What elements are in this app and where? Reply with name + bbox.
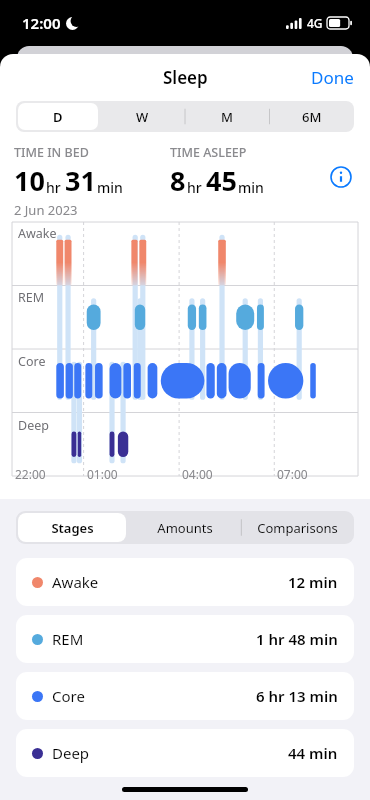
staticText: REM xyxy=(52,629,84,649)
staticText: hr xyxy=(187,178,202,197)
staticText: 44 min xyxy=(288,743,338,763)
button[interactable]: Deep xyxy=(16,729,354,777)
button[interactable]: Awake xyxy=(16,558,354,606)
staticText: 12:00 xyxy=(22,13,61,33)
staticText: Core xyxy=(52,686,85,706)
staticText: 8 xyxy=(170,162,186,199)
button[interactable]: Information about sleep data xyxy=(326,162,356,192)
button[interactable]: Done xyxy=(295,58,370,97)
staticText: Awake xyxy=(52,572,99,592)
button[interactable]: W xyxy=(102,103,182,130)
button[interactable]: M xyxy=(186,103,267,130)
button[interactable]: Stages xyxy=(18,513,126,542)
staticText: 01:00 xyxy=(87,466,118,482)
button[interactable]: 6M xyxy=(271,103,352,130)
staticText: TIME ASLEEP xyxy=(170,144,247,161)
staticText: 1 hr 48 min xyxy=(256,629,338,649)
staticText: 2 Jun 2023 xyxy=(14,201,78,219)
staticText: REM xyxy=(18,289,45,306)
staticText: 10 xyxy=(14,162,45,199)
staticText: Core xyxy=(18,353,46,370)
staticText: 6 hr 13 min xyxy=(256,686,338,706)
button[interactable]: D xyxy=(18,103,98,130)
button[interactable]: Comparisons xyxy=(243,513,352,542)
staticText: 22:00 xyxy=(15,466,46,482)
staticText: 6M xyxy=(302,108,322,126)
staticText: W xyxy=(136,108,149,126)
staticText: 4G xyxy=(307,15,323,31)
staticText: Deep xyxy=(18,417,49,434)
staticText: min xyxy=(238,178,264,197)
staticText: Amounts xyxy=(157,519,213,537)
staticText: 45 xyxy=(206,162,237,199)
button[interactable]: REM xyxy=(16,615,354,663)
staticText: hr xyxy=(46,178,61,197)
button[interactable]: Amounts xyxy=(130,513,239,542)
staticText: Deep xyxy=(52,743,90,763)
staticText: M xyxy=(221,108,233,126)
button[interactable]: Core xyxy=(16,672,354,720)
staticText: 07:00 xyxy=(277,466,308,482)
staticText: Sleep xyxy=(163,66,208,89)
staticText: 31 xyxy=(65,162,96,199)
staticText: min xyxy=(97,178,123,197)
staticText: 04:00 xyxy=(182,466,213,482)
staticText: Comparisons xyxy=(257,519,338,537)
staticText: Stages xyxy=(51,519,94,537)
staticText: TIME IN BED xyxy=(14,144,89,161)
staticText: 12 min xyxy=(288,572,338,592)
staticText: Done xyxy=(311,66,354,89)
staticText: D xyxy=(53,108,63,126)
staticText: Awake xyxy=(18,225,57,242)
